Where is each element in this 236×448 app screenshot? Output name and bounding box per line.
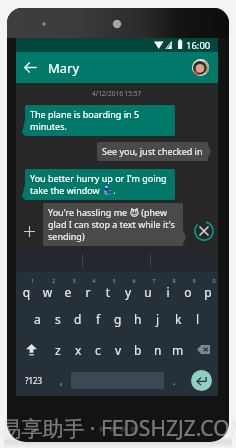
- button[interactable]: v: [108, 334, 128, 365]
- button[interactable]: j: [148, 303, 168, 334]
- button[interactable]: 9: [178, 272, 198, 303]
- button[interactable]: .: [164, 365, 184, 396]
- staticText: 8: [164, 277, 184, 284]
- button[interactable]: m: [168, 334, 188, 365]
- button[interactable]: The plane is boarding in 5 minutes.: [25, 105, 175, 136]
- button[interactable]: b: [128, 334, 148, 365]
- staticText: 7: [144, 277, 164, 284]
- staticText: 4: [84, 277, 104, 284]
- staticText: g: [114, 311, 122, 327]
- staticText: ?123: [25, 375, 43, 386]
- staticText: f: [96, 311, 101, 327]
- button[interactable]: 5: [98, 272, 118, 303]
- staticText: 0: [204, 277, 224, 284]
- staticText: 5: [104, 277, 124, 284]
- staticText: v: [115, 342, 122, 358]
- button[interactable]: n: [148, 334, 168, 365]
- staticText: 易享助手 · FEDSHZJZ.COM: [0, 414, 236, 443]
- staticText: a: [34, 311, 41, 327]
- button[interactable]: g: [108, 303, 128, 334]
- staticText: z: [55, 342, 61, 358]
- staticText: You're hassling me 😈 (phew glad I can st…: [48, 206, 178, 242]
- button[interactable]: x: [68, 334, 88, 365]
- staticText: w: [37, 284, 58, 300]
- button[interactable]: f: [88, 303, 108, 334]
- button[interactable]: ,: [51, 365, 71, 396]
- button[interactable]: Back: [16, 53, 45, 82]
- staticText: 4/12/2016 15:57: [92, 89, 142, 98]
- staticText: r: [78, 284, 98, 300]
- button[interactable]: You better hurry up or I'm going take th…: [25, 169, 175, 200]
- staticText: 6: [124, 277, 144, 284]
- staticText: b: [134, 342, 142, 358]
- staticText: You better hurry up or I'm going take th…: [30, 172, 170, 196]
- button[interactable]: ?123: [16, 365, 51, 396]
- staticText: h: [134, 311, 142, 327]
- button[interactable]: c: [88, 334, 108, 365]
- button[interactable]: 0: [198, 272, 218, 303]
- staticText: 3: [64, 277, 84, 284]
- staticText: j: [156, 311, 160, 327]
- button[interactable]: Contact photo: [192, 59, 209, 76]
- button[interactable]: 3: [58, 272, 78, 303]
- button[interactable]: 6: [118, 272, 138, 303]
- button[interactable]: Add attachment: [16, 216, 43, 246]
- button[interactable]: 2: [37, 272, 58, 303]
- button[interactable]: You're hassling me 😈 (phew glad I can st…: [43, 203, 183, 246]
- button[interactable]: 8: [158, 272, 178, 303]
- button[interactable]: 7: [138, 272, 158, 303]
- staticText: l: [196, 311, 200, 327]
- staticText: s: [55, 311, 61, 327]
- staticText: See you, just checked in: [102, 145, 203, 157]
- staticText: 1: [22, 277, 43, 284]
- staticText: t: [98, 284, 118, 300]
- staticText: u: [138, 284, 158, 300]
- button[interactable]: s: [48, 303, 68, 334]
- staticText: x: [75, 342, 82, 358]
- button[interactable]: 1: [16, 272, 37, 303]
- staticText: c: [95, 342, 101, 358]
- staticText: q: [16, 284, 37, 300]
- button[interactable]: Backspace: [188, 334, 218, 365]
- staticText: ,: [60, 374, 63, 388]
- button[interactable]: k: [168, 303, 188, 334]
- button[interactable]: Shift: [16, 334, 47, 365]
- staticText: n: [154, 342, 162, 358]
- staticText: The plane is boarding in 5 minutes.: [30, 108, 170, 132]
- button[interactable]: Enter: [191, 370, 212, 391]
- button[interactable]: z: [47, 334, 68, 365]
- button[interactable]: h: [128, 303, 148, 334]
- staticText: .: [173, 374, 176, 388]
- button[interactable]: Cancel sending: [190, 216, 218, 246]
- button[interactable]: See you, just checked in: [97, 142, 208, 161]
- staticText: e: [58, 284, 78, 300]
- button[interactable]: d: [68, 303, 88, 334]
- button[interactable]: l: [188, 303, 208, 334]
- staticText: Mary: [48, 59, 80, 77]
- staticText: 2: [43, 277, 64, 284]
- staticText: m: [172, 342, 184, 358]
- staticText: o: [178, 284, 198, 300]
- button[interactable]: a: [27, 303, 48, 334]
- staticText: d: [74, 311, 82, 327]
- staticText: p: [198, 284, 218, 300]
- staticText: y: [118, 284, 138, 300]
- staticText: i: [158, 284, 178, 300]
- button[interactable]: 4: [78, 272, 98, 303]
- staticText: k: [175, 311, 182, 327]
- staticText: 16:00: [186, 39, 211, 52]
- staticText: 9: [184, 277, 204, 284]
